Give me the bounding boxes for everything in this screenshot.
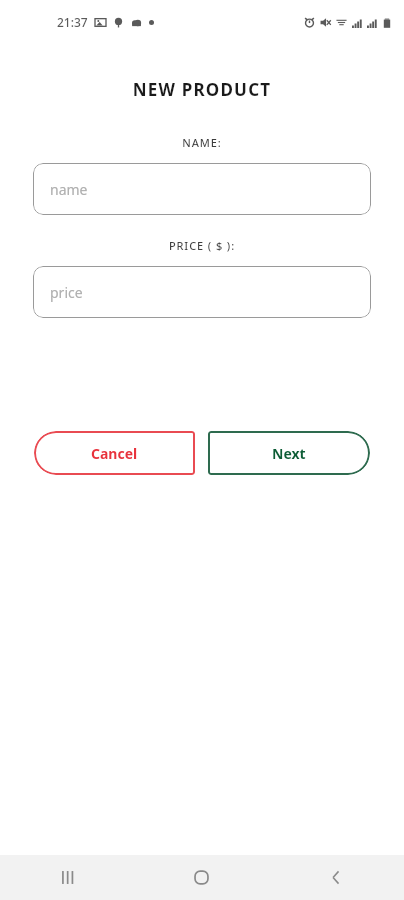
- staticText: NAME:: [0, 135, 404, 150]
- button[interactable]: Home: [134, 855, 269, 900]
- button[interactable]: price: [33, 266, 371, 318]
- button[interactable]: Recent apps: [0, 855, 134, 900]
- staticText: Next: [272, 444, 306, 463]
- staticText: price: [50, 283, 83, 302]
- staticText: Cancel: [91, 444, 138, 463]
- button[interactable]: name: [33, 163, 371, 215]
- staticText: NEW PRODUCT: [0, 78, 404, 101]
- staticText: PRICE ( $ ):: [0, 238, 404, 253]
- button[interactable]: Back: [269, 855, 404, 900]
- staticText: name: [50, 180, 88, 199]
- button[interactable]: Cancel: [34, 431, 195, 475]
- staticText: 21:37: [57, 14, 88, 30]
- button[interactable]: Next: [208, 431, 370, 475]
